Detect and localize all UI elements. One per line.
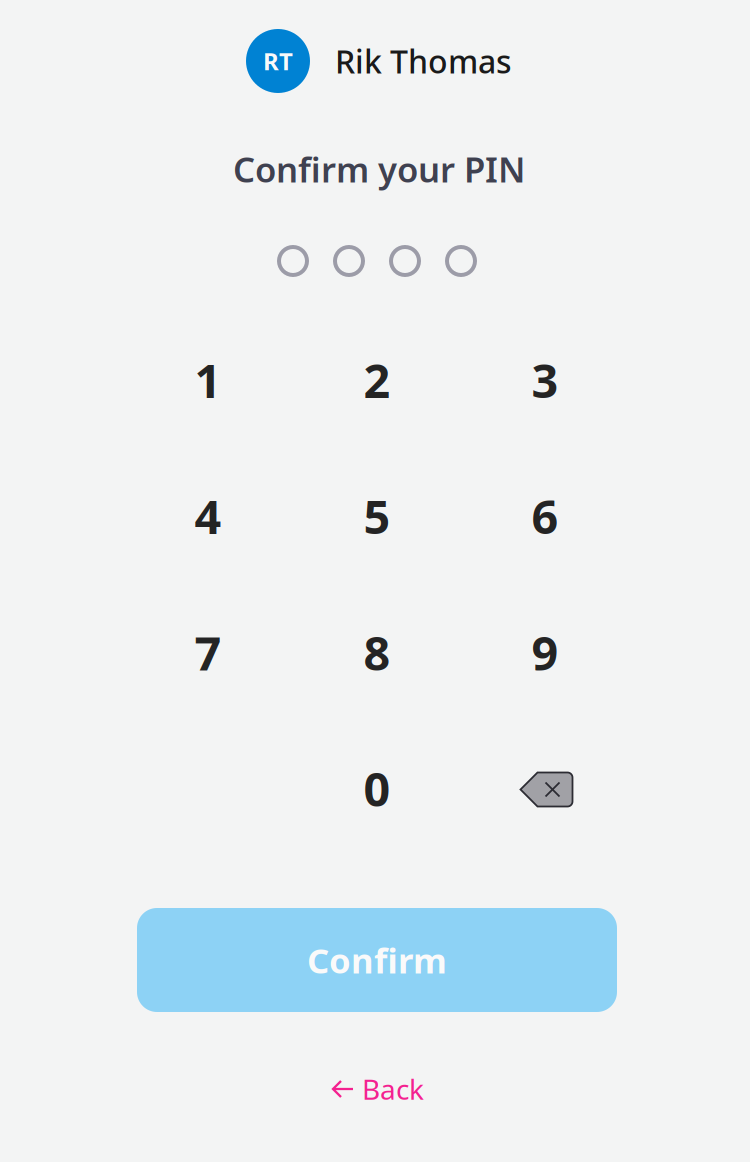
staticText: Confirm your PIN (233, 146, 525, 192)
button[interactable]: Back (321, 1060, 436, 1118)
staticText: 4 (194, 485, 221, 547)
button[interactable]: 9 (465, 590, 625, 714)
staticText: Rik Thomas (335, 40, 512, 82)
staticText: 0 (363, 757, 390, 819)
button[interactable]: 6 (465, 454, 625, 578)
button[interactable]: 4 (128, 454, 288, 578)
staticText: RT (263, 45, 293, 77)
button[interactable]: 8 (297, 590, 457, 714)
staticText: 3 (531, 349, 558, 411)
button[interactable]: 7 (128, 590, 288, 714)
button[interactable]: 0 (297, 726, 457, 850)
button[interactable]: 3 (465, 318, 625, 442)
staticText: Confirm (307, 937, 447, 983)
staticText: 9 (531, 621, 558, 683)
staticText: Back (362, 1070, 424, 1108)
button[interactable]: 5 (297, 454, 457, 578)
staticText: 1 (194, 349, 221, 411)
button[interactable]: Delete (466, 727, 626, 851)
button[interactable]: 2 (297, 318, 457, 442)
staticText: 6 (531, 485, 558, 547)
staticText: 5 (363, 485, 390, 547)
staticText: 2 (363, 349, 390, 411)
button[interactable]: Confirm (137, 908, 617, 1012)
staticText: 8 (363, 621, 390, 683)
staticText: 7 (194, 621, 221, 683)
button[interactable]: 1 (128, 318, 288, 442)
